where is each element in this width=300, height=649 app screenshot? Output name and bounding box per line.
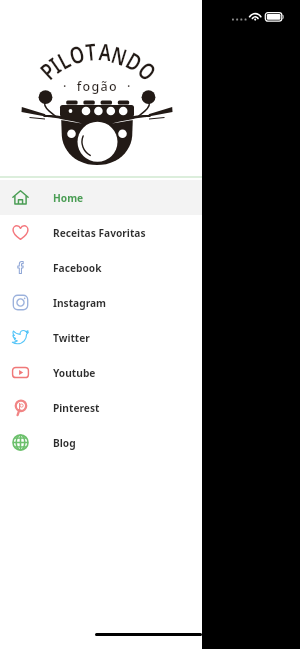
staticText: Receitas Favoritas bbox=[53, 226, 146, 240]
button[interactable]: Pinterest bbox=[0, 390, 202, 425]
staticText: Twitter bbox=[53, 331, 90, 345]
button[interactable]: Youtube bbox=[0, 355, 202, 390]
staticText: Instagram bbox=[53, 296, 107, 310]
staticText: Blog bbox=[53, 436, 76, 450]
button[interactable]: Blog bbox=[0, 425, 202, 460]
staticText: I bbox=[42, 49, 64, 76]
staticText: Home bbox=[53, 191, 84, 205]
button[interactable]: Receitas Favoritas bbox=[0, 215, 202, 250]
staticText: Pinterest bbox=[53, 401, 100, 415]
staticText: N bbox=[109, 38, 131, 68]
staticText: L bbox=[51, 43, 73, 72]
staticText: T bbox=[84, 35, 97, 63]
button[interactable]: Home bbox=[0, 180, 202, 215]
staticText: A bbox=[98, 35, 113, 63]
staticText: O bbox=[65, 37, 87, 67]
staticText: O bbox=[134, 54, 164, 84]
staticText: Facebook bbox=[53, 261, 102, 275]
staticText: P bbox=[32, 55, 59, 83]
button[interactable]: Instagram bbox=[0, 285, 202, 320]
staticText: Youtube bbox=[53, 366, 96, 380]
staticText: · fogão · bbox=[63, 78, 132, 95]
button[interactable]: Facebook bbox=[0, 250, 202, 285]
staticText: D bbox=[122, 44, 148, 74]
button[interactable]: Twitter bbox=[0, 320, 202, 355]
